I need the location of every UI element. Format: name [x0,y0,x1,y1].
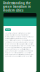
staticText: Understanding the green transition in mo… [3,1,31,12]
staticText: Lorem ipsum dolor sit amet consectetur a… [5,32,34,57]
staticText: NEWS [6,29,10,31]
